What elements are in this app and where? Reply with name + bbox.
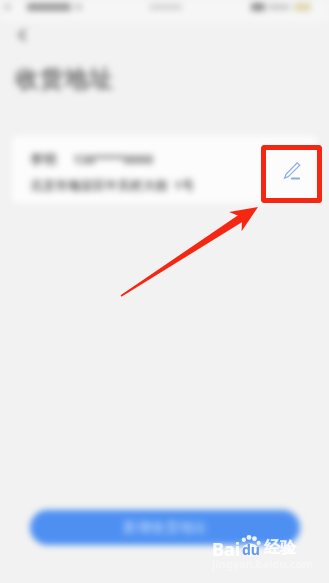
- staticText: 新增收货地址: [123, 519, 207, 537]
- staticText: 李明 138****0000: [30, 150, 154, 168]
- button[interactable]: 新增收货地址: [30, 510, 300, 545]
- button[interactable]: Back: [13, 26, 31, 44]
- staticText: 收货地址: [15, 65, 114, 94]
- button[interactable]: Edit address: [282, 161, 301, 180]
- button[interactable]: 李明 138****0000: [12, 136, 317, 203]
- staticText: 经验: [264, 538, 296, 558]
- staticText: 北京市海淀区中关村大街 1号: [30, 177, 194, 194]
- staticText: du: [242, 540, 260, 559]
- staticText: Bai: [212, 537, 241, 561]
